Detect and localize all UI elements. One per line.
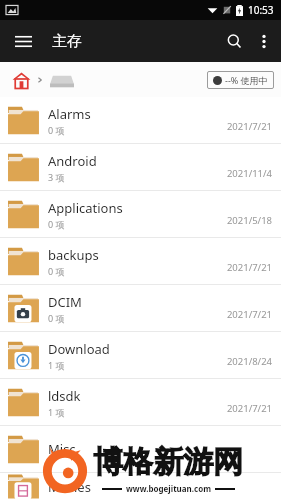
staticText: 0 项 bbox=[48, 265, 65, 277]
staticText: Applications bbox=[48, 199, 123, 217]
button[interactable]: backups bbox=[0, 238, 281, 284]
staticText: 2021/8/24 bbox=[226, 355, 272, 368]
button[interactable]: Movies bbox=[0, 473, 281, 500]
staticText: 3 项 bbox=[48, 171, 65, 183]
button[interactable]: Internal storage bbox=[48, 68, 76, 92]
staticText: 2021/11/4 bbox=[226, 167, 272, 180]
staticText: 0 项 bbox=[48, 218, 65, 230]
staticText: DCIM bbox=[48, 293, 82, 311]
button[interactable]: DCIM bbox=[0, 285, 281, 331]
staticText: 10:53 bbox=[248, 3, 274, 17]
staticText: Misc bbox=[48, 440, 76, 458]
staticText: 1 项 bbox=[48, 359, 65, 371]
staticText: 1 项 bbox=[48, 406, 65, 418]
button[interactable]: Search bbox=[217, 24, 251, 58]
staticText: Movies bbox=[48, 478, 91, 496]
staticText: 2021/7/21 bbox=[226, 120, 272, 133]
staticText: 博格新游网 bbox=[93, 443, 243, 481]
staticText: 2021/5/18 bbox=[226, 214, 272, 227]
button[interactable]: Open navigation drawer bbox=[8, 26, 38, 56]
staticText: 0 项 bbox=[48, 124, 65, 136]
button[interactable]: Misc bbox=[0, 426, 281, 472]
staticText: Android bbox=[48, 152, 97, 170]
staticText: 0 项 bbox=[48, 312, 65, 324]
staticText: 2021/7/21 bbox=[226, 261, 272, 274]
button[interactable]: Download bbox=[0, 332, 281, 378]
staticText: 2021/7/21 bbox=[226, 308, 272, 321]
button[interactable]: Home bbox=[8, 67, 34, 93]
staticText: 主存 bbox=[52, 32, 82, 51]
button[interactable]: More options bbox=[251, 26, 277, 56]
staticText: --% 使用中 bbox=[225, 74, 268, 86]
staticText: Download bbox=[48, 340, 110, 358]
button[interactable]: Alarms bbox=[0, 97, 281, 143]
staticText: backups bbox=[48, 246, 99, 264]
staticText: ldsdk bbox=[48, 387, 81, 405]
staticText: www.bogejituan.com bbox=[126, 483, 211, 494]
staticText: 2021/7/21 bbox=[226, 402, 272, 415]
button[interactable]: ldsdk bbox=[0, 379, 281, 425]
button[interactable]: Applications bbox=[0, 191, 281, 237]
button[interactable]: Android bbox=[0, 144, 281, 190]
button[interactable]: --% 使用中 bbox=[213, 74, 268, 86]
staticText: Alarms bbox=[48, 105, 91, 123]
